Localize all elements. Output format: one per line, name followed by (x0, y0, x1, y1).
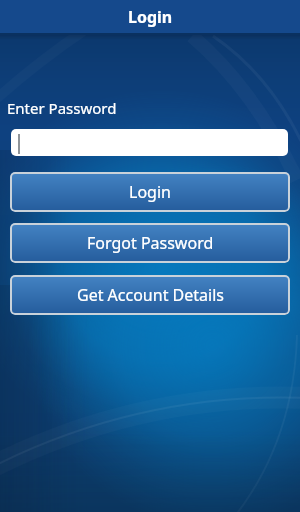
button[interactable] (11, 129, 288, 156)
staticText: Login (128, 6, 173, 28)
button[interactable]: Login (10, 172, 290, 212)
button[interactable]: Forgot Password (10, 223, 290, 263)
staticText: Get Account Details (77, 284, 224, 306)
staticText: Forgot Password (87, 232, 214, 254)
button[interactable]: Get Account Details (10, 275, 290, 315)
staticText: Login (129, 181, 171, 203)
staticText: Enter Password (7, 98, 117, 118)
